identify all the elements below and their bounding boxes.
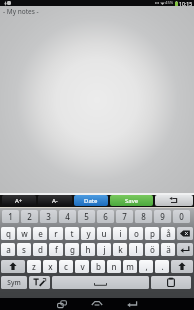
button[interactable]: Shift <box>1 260 25 273</box>
staticText: u <box>101 228 107 239</box>
button[interactable]: q <box>1 227 15 240</box>
button[interactable]: k <box>113 243 127 256</box>
button[interactable]: Date <box>74 195 108 206</box>
staticText: 0 <box>179 211 184 222</box>
button[interactable]: p <box>145 227 159 240</box>
button[interactable]: f <box>49 243 63 256</box>
button[interactable]: g <box>65 243 79 256</box>
staticText: A+ <box>15 197 23 205</box>
button[interactable]: A- <box>38 195 72 206</box>
button[interactable]: Input method <box>29 276 50 289</box>
button[interactable]: i <box>113 227 127 240</box>
button[interactable]: Home <box>86 298 108 310</box>
button[interactable]: Sym <box>1 276 27 289</box>
staticText: 7 <box>122 211 127 222</box>
button[interactable]: 3 <box>40 210 57 223</box>
button[interactable]: a <box>1 243 15 256</box>
button[interactable]: 2 <box>21 210 38 223</box>
button[interactable]: Save <box>110 195 153 206</box>
staticText: l <box>135 244 138 255</box>
staticText: o <box>134 228 139 239</box>
button[interactable]: , <box>139 260 153 273</box>
button[interactable]: 9 <box>154 210 171 223</box>
staticText: 3 <box>46 211 51 222</box>
staticText: h <box>85 244 91 255</box>
button[interactable]: j <box>97 243 111 256</box>
staticText: Sym <box>7 278 21 287</box>
staticText: c <box>64 261 68 272</box>
staticText: k <box>118 244 123 255</box>
button[interactable]: d <box>33 243 47 256</box>
button[interactable]: 6 <box>97 210 114 223</box>
button[interactable]: . <box>155 260 169 273</box>
button[interactable]: Backspace <box>177 227 193 240</box>
staticText: x <box>48 261 53 272</box>
staticText: b <box>96 261 101 272</box>
staticText: , <box>145 261 148 272</box>
staticText: q <box>6 228 11 239</box>
button[interactable]: ö <box>145 243 159 256</box>
button[interactable]: å <box>161 227 175 240</box>
staticText: d <box>38 244 43 255</box>
staticText: t <box>70 228 74 239</box>
staticText: 9 <box>160 211 165 222</box>
staticText: a <box>6 244 11 255</box>
button[interactable]: 4 <box>59 210 76 223</box>
staticText: A- <box>52 197 58 205</box>
staticText: . <box>161 261 164 272</box>
button[interactable]: o <box>129 227 143 240</box>
button[interactable]: e <box>33 227 47 240</box>
button[interactable]: 0 <box>173 210 190 223</box>
staticText: 4 <box>65 211 70 222</box>
button[interactable]: Undo <box>155 195 193 206</box>
button[interactable]: b <box>91 260 105 273</box>
button[interactable]: 5 <box>78 210 95 223</box>
staticText: 6 <box>103 211 108 222</box>
staticText: 8 <box>141 211 146 222</box>
button[interactable]: 8 <box>135 210 152 223</box>
staticText: y <box>86 228 91 239</box>
button[interactable]: A+ <box>2 195 36 206</box>
staticText: w <box>21 228 28 239</box>
button[interactable]: h <box>81 243 95 256</box>
staticText: m <box>126 261 134 272</box>
staticText: z <box>32 261 36 272</box>
button[interactable]: 1 <box>2 210 19 223</box>
button[interactable]: v <box>75 260 89 273</box>
button[interactable]: t <box>65 227 79 240</box>
button[interactable]: c <box>59 260 73 273</box>
staticText: r <box>54 228 58 239</box>
staticText: v <box>80 261 85 272</box>
button[interactable]: 7 <box>116 210 133 223</box>
staticText: f <box>55 244 58 255</box>
button[interactable]: u <box>97 227 111 240</box>
staticText: g <box>70 244 75 255</box>
button[interactable]: Clipboard <box>151 276 191 289</box>
button[interactable]: x <box>43 260 57 273</box>
staticText: s <box>22 244 26 255</box>
button[interactable]: l <box>129 243 143 256</box>
staticText: 10:15 <box>179 0 193 6</box>
staticText: 1 <box>8 211 13 222</box>
staticText: p <box>150 228 155 239</box>
button[interactable]: y <box>81 227 95 240</box>
button[interactable]: z <box>27 260 41 273</box>
button[interactable]: n <box>107 260 121 273</box>
button[interactable]: Back <box>121 298 143 310</box>
button[interactable]: s <box>17 243 31 256</box>
button[interactable]: Recents <box>51 298 73 310</box>
staticText: å <box>166 228 171 239</box>
button[interactable]: Shift <box>171 260 193 273</box>
button[interactable]: w <box>17 227 31 240</box>
staticText: 2 <box>27 211 32 222</box>
staticText: n <box>111 261 117 272</box>
staticText: 45% <box>165 0 174 6</box>
staticText: ö <box>150 244 155 255</box>
button[interactable]: r <box>49 227 63 240</box>
staticText: i <box>119 228 122 239</box>
staticText: Date <box>84 197 98 205</box>
button[interactable]: Space <box>52 276 149 289</box>
button[interactable]: ä <box>161 243 175 256</box>
button[interactable]: m <box>123 260 137 273</box>
button[interactable]: Enter <box>177 243 193 256</box>
